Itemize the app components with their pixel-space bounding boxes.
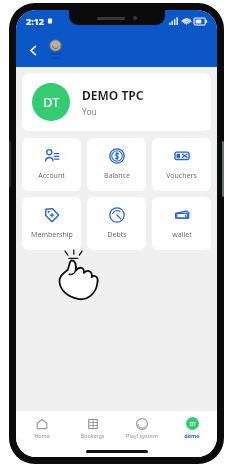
button[interactable]: Account — [22, 138, 81, 191]
staticText: Play! system — [126, 432, 158, 439]
button[interactable]: DT — [167, 411, 217, 445]
button[interactable]: Debts — [87, 197, 146, 250]
staticText: demo — [184, 432, 200, 439]
staticText: Debts — [107, 230, 127, 240]
staticText: 2:12 — [26, 15, 44, 27]
button[interactable]: Balance — [87, 138, 146, 191]
staticText: Padel — [51, 51, 61, 56]
staticText: Membership — [31, 230, 73, 240]
staticText: Account — [38, 171, 65, 181]
button[interactable]: DT — [22, 73, 211, 131]
staticText: Bookings — [80, 432, 105, 439]
staticText: centre — [51, 56, 60, 60]
button[interactable]: Home — [16, 411, 67, 445]
button[interactable]: wallet — [152, 197, 211, 250]
staticText: wallet — [172, 230, 192, 240]
button[interactable]: Vouchers — [152, 138, 211, 191]
button[interactable]: Bookings — [67, 411, 117, 445]
staticText: DEMO TPC — [82, 87, 144, 103]
staticText: Vouchers — [166, 171, 197, 181]
staticText: DT — [43, 93, 60, 111]
button[interactable]: Play! system — [117, 411, 167, 445]
staticText: Balance — [104, 171, 130, 181]
staticText: Home — [34, 432, 50, 439]
staticText: DT — [190, 421, 196, 427]
button[interactable]: Back — [22, 39, 44, 61]
button[interactable]: Membership — [22, 197, 81, 250]
staticText: You — [82, 106, 97, 118]
